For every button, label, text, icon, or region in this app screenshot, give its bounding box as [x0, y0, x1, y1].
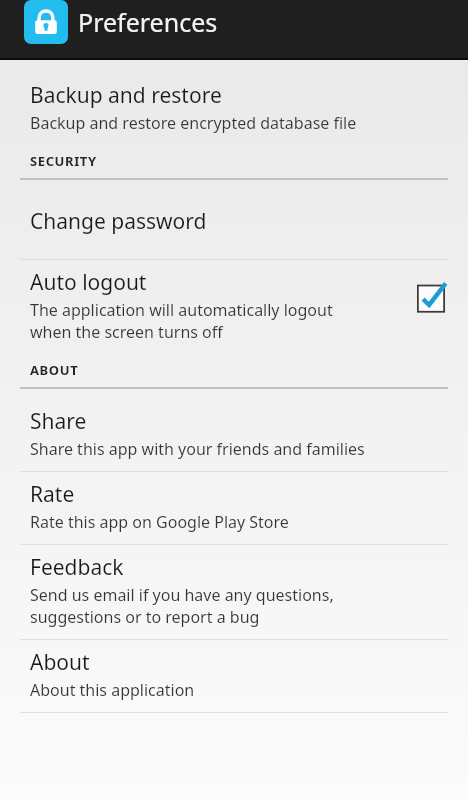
staticText: Preferences	[78, 5, 218, 39]
button[interactable]: Backup and restore	[0, 73, 468, 145]
staticText: SECURITY	[30, 152, 97, 170]
staticText: Feedback	[30, 553, 124, 582]
button[interactable]: Auto logout	[0, 260, 468, 354]
staticText: The application will automatically logou…	[30, 299, 333, 321]
staticText: suggestions or to report a bug	[30, 606, 260, 628]
other: App icon	[24, 0, 68, 44]
staticText: About this application	[30, 679, 195, 701]
staticText: Send us email if you have any questions,	[30, 584, 334, 606]
staticText: ABOUT	[30, 361, 79, 379]
button[interactable]: About	[0, 640, 468, 712]
staticText: Share	[30, 407, 87, 436]
button[interactable]: Change password	[0, 190, 468, 259]
staticText: Backup and restore	[30, 81, 222, 110]
staticText: Backup and restore encrypted database fi…	[30, 112, 357, 134]
staticText: About	[30, 648, 90, 677]
button[interactable]: Auto logout toggle	[414, 281, 448, 315]
staticText: Share this app with your friends and fam…	[30, 438, 365, 460]
staticText: when the screen turns off	[30, 321, 223, 343]
staticText: Auto logout	[30, 268, 147, 297]
button[interactable]: Feedback	[0, 545, 468, 639]
staticText: Change password	[30, 207, 207, 236]
staticText: Rate this app on Google Play Store	[30, 511, 289, 533]
button[interactable]: Rate	[0, 472, 468, 544]
button[interactable]: Share	[0, 399, 468, 471]
staticText: Rate	[30, 480, 75, 509]
